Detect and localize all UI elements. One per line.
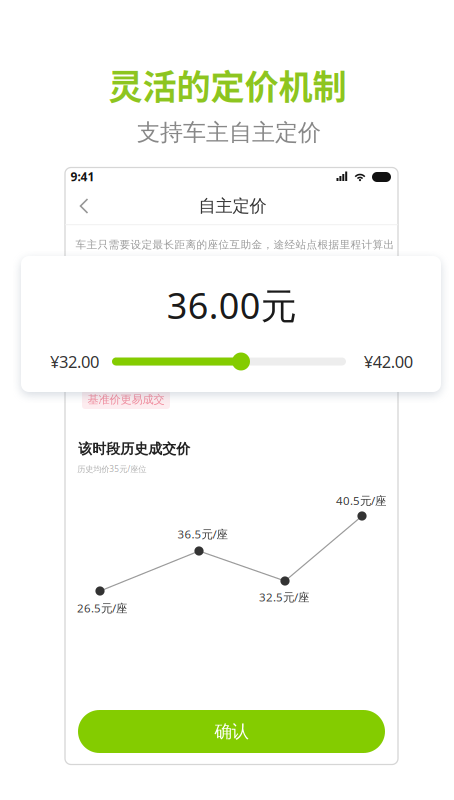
staticText: 40.5元/座: [336, 493, 386, 508]
staticText: ¥42.00: [364, 350, 413, 373]
staticText: 自主定价: [198, 195, 266, 217]
staticText: ¥32.00: [50, 350, 99, 373]
staticText: 基准价更易成交: [87, 392, 164, 406]
staticText: 确认: [214, 720, 248, 742]
staticText: 车主只需要设定最长距离的座位互助金，途经站点根据里程计算出: [75, 238, 394, 251]
staticText: 支持车主自主定价: [137, 118, 321, 147]
staticText: 36.00元: [167, 280, 297, 329]
button[interactable]: 确认: [78, 710, 385, 753]
staticText: 历史均价35元/座位: [77, 463, 146, 474]
staticText: 32.5元/座: [259, 589, 309, 605]
staticText: 26.5元/座: [77, 600, 127, 616]
button[interactable]: Back: [71, 192, 97, 220]
staticText: 该时段历史成交价: [78, 440, 190, 458]
staticText: 灵活的定价机制: [108, 60, 346, 109]
staticText: 36.5元/座: [177, 526, 227, 542]
staticText: 9:41: [70, 168, 94, 185]
